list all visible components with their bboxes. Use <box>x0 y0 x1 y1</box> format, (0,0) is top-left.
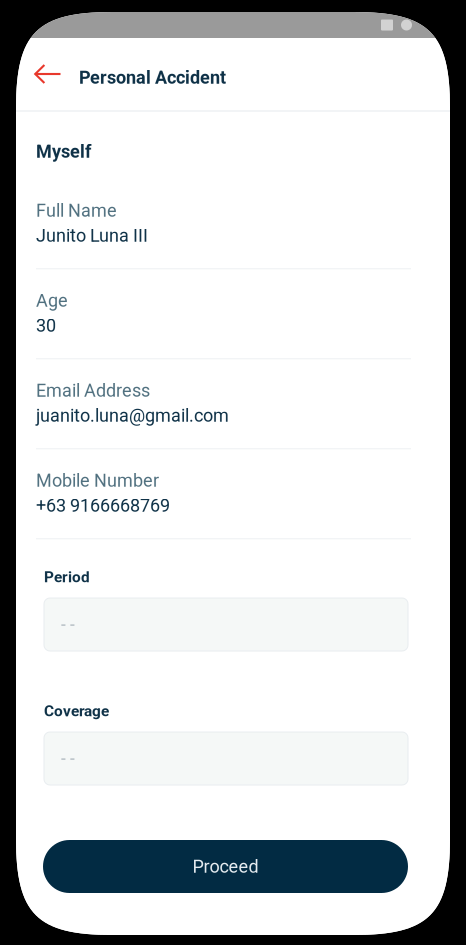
staticText: Proceed <box>192 856 258 877</box>
staticText: Full Name <box>36 200 117 221</box>
staticText: Period <box>44 568 90 586</box>
staticText: Personal Accident <box>79 67 226 88</box>
button[interactable]: Back <box>16 38 61 110</box>
button[interactable]: Proceed <box>43 840 408 893</box>
staticText: +63 9166668769 <box>36 495 170 516</box>
staticText: juanito.luna@gmail.com <box>36 405 229 426</box>
staticText: Age <box>36 290 68 311</box>
staticText: - - <box>61 614 75 635</box>
staticText: Junito Luna III <box>36 225 148 246</box>
staticText: Mobile Number <box>36 470 159 491</box>
staticText: Myself <box>36 141 91 162</box>
staticText: 30 <box>36 315 56 336</box>
staticText: Email Address <box>36 380 150 401</box>
staticText: Coverage <box>44 702 109 720</box>
staticText: - - <box>61 748 75 769</box>
